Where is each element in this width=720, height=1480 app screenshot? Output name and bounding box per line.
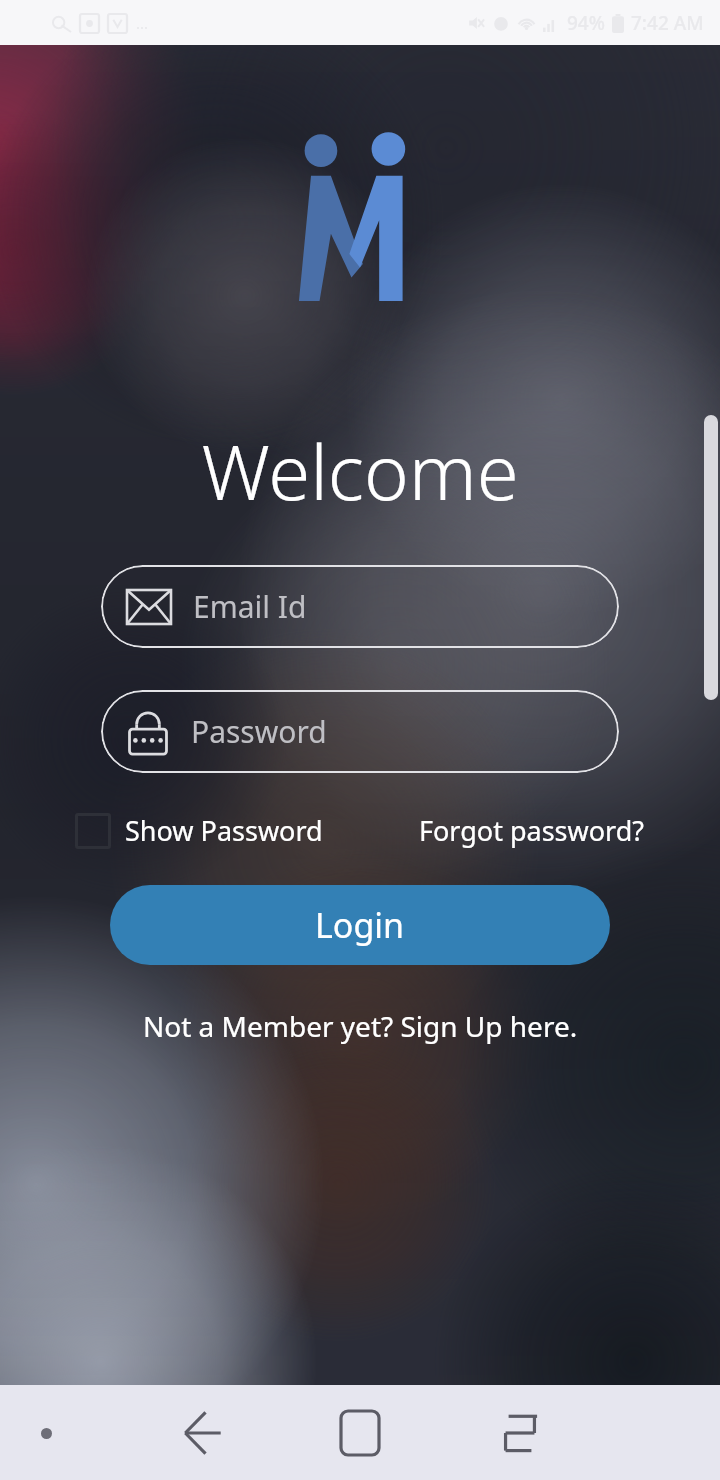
staticText: Password (191, 711, 327, 752)
button[interactable]: Back (160, 1393, 240, 1473)
staticText: 94% (567, 10, 605, 36)
staticText: Welcome (201, 419, 519, 523)
button[interactable]: Recents (480, 1393, 560, 1473)
button[interactable]: Indicator (26, 1413, 66, 1453)
button[interactable]: Email Id (101, 565, 619, 648)
button[interactable]: Home (320, 1393, 400, 1473)
staticText: 7:42 AM (631, 10, 704, 36)
button[interactable]: Login (110, 885, 610, 965)
button[interactable]: Password (101, 690, 619, 773)
button[interactable]: Not a Member yet? Sign Up here. (143, 1003, 578, 1049)
button[interactable]: Show Password (75, 806, 323, 855)
button[interactable]: Forgot password? (419, 806, 645, 855)
staticText: Email Id (193, 586, 307, 627)
staticText: Login (315, 902, 405, 948)
staticText: Show Password (125, 812, 323, 849)
